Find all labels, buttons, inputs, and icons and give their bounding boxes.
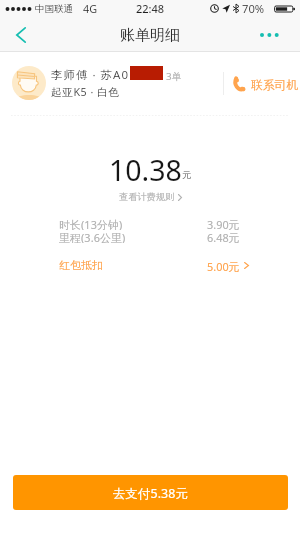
staticText: 里程(3.6公里) — [59, 230, 126, 243]
staticText: 3.90元 — [207, 217, 240, 230]
staticText: 李师傅 · 苏A0 — [51, 67, 129, 83]
staticText: 红包抵扣 — [59, 259, 103, 272]
staticText: 时长(13分钟) — [59, 217, 123, 230]
staticText: 账单明细 — [120, 26, 180, 45]
button[interactable]: 时长(13分钟) — [0, 217, 300, 230]
staticText: 去支付5.38元 — [113, 485, 188, 502]
button[interactable]: Back — [0, 19, 42, 51]
button[interactable]: 里程(3.6公里) — [0, 230, 300, 243]
staticText: 联系司机 — [251, 78, 299, 93]
staticText: 22:48 — [136, 1, 165, 16]
staticText: 5.00元 — [207, 259, 240, 272]
button[interactable]: 去支付5.38元 — [13, 475, 288, 510]
button[interactable]: 联系司机 — [228, 51, 300, 115]
staticText: 3单 — [166, 70, 182, 83]
button[interactable]: 查看计费规则 — [115, 189, 186, 205]
staticText: 6.48元 — [207, 230, 240, 243]
staticText: 10.38 — [109, 151, 182, 190]
button[interactable]: More options — [256, 19, 300, 51]
staticText: 4G — [83, 1, 98, 16]
staticText: 中国联通 — [35, 3, 73, 15]
staticText: 起亚K5 · 白色 — [51, 85, 120, 100]
staticText: 查看计费规则 — [119, 191, 175, 203]
staticText: 元 — [182, 169, 192, 181]
button[interactable]: 红包抵扣 — [0, 259, 300, 272]
staticText: 70% — [242, 1, 265, 16]
